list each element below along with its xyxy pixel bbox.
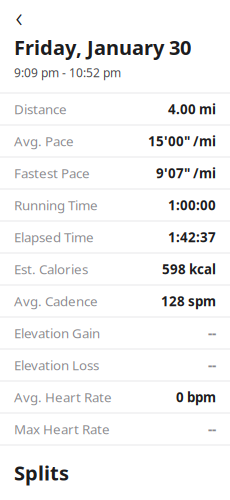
staticText: Elapsed Time xyxy=(14,228,94,246)
staticText: 1:42:37 xyxy=(168,228,216,246)
staticText: Est. Calories xyxy=(14,260,88,278)
staticText: Fastest Pace xyxy=(14,164,90,182)
staticText: 4.00 mi xyxy=(168,100,216,118)
staticText: Distance xyxy=(14,100,67,118)
staticText: Avg. Heart Rate xyxy=(14,388,112,406)
staticText: 9:09 pm - 10:52 pm xyxy=(14,65,121,80)
staticText: 0 bpm xyxy=(176,388,216,406)
staticText: -- xyxy=(208,356,216,374)
staticText: Elevation Gain xyxy=(14,324,100,342)
staticText: 9'07" /mi xyxy=(156,164,216,182)
staticText: Elevation Loss xyxy=(14,356,99,374)
staticText: Avg. Cadence xyxy=(14,292,98,310)
staticText: Splits xyxy=(14,459,69,486)
staticText: Friday, January 30 xyxy=(14,34,191,61)
staticText: ‹ xyxy=(15,0,22,35)
staticText: Running Time xyxy=(14,196,98,214)
staticText: 128 spm xyxy=(161,292,216,310)
staticText: -- xyxy=(208,420,216,438)
staticText: Max Heart Rate xyxy=(14,420,110,438)
staticText: 15'00" /mi xyxy=(148,132,216,150)
button[interactable]: Back xyxy=(6,6,32,28)
staticText: 598 kcal xyxy=(162,260,216,278)
staticText: 1:00:00 xyxy=(168,196,216,214)
staticText: Avg. Pace xyxy=(14,132,74,150)
staticText: -- xyxy=(208,324,216,342)
